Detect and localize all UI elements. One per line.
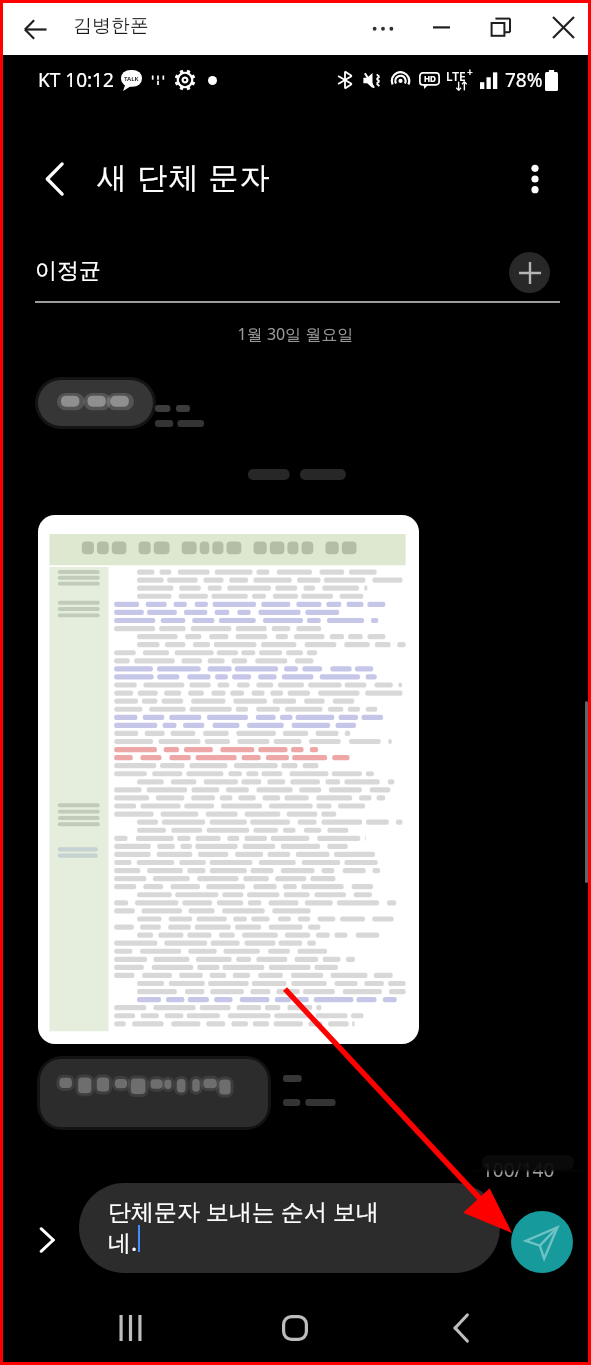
staticText: 김병한폰 [73, 14, 149, 38]
button[interactable]: Maximize [479, 5, 523, 49]
button[interactable]: Recent apps [102, 1300, 158, 1356]
button[interactable]: More options [509, 153, 561, 205]
staticText: HD [424, 73, 436, 84]
button[interactable]: Minimize [419, 5, 463, 49]
button[interactable]: Attached image [38, 515, 419, 1044]
button[interactable]: Navigate back [30, 155, 78, 203]
staticText: KT 10:12 [38, 67, 114, 93]
button[interactable] [40, 1059, 268, 1127]
button[interactable]: Back [15, 9, 55, 49]
staticText: 1월 30일 월요일 [3, 323, 588, 345]
button[interactable]: Send message [511, 1211, 573, 1273]
button[interactable]: Back [433, 1300, 489, 1356]
staticText: 새 단체 문자 [97, 156, 271, 197]
staticText: 100/140 [482, 1157, 555, 1183]
button[interactable]: More [361, 5, 405, 49]
button[interactable]: Add recipient [509, 252, 550, 293]
button[interactable]: 단체문자 보내는 순서 보내 [79, 1183, 500, 1273]
staticText: TALK [124, 75, 139, 83]
button[interactable]: Show attachment options [23, 1216, 71, 1264]
staticText: 이정균 [35, 257, 101, 285]
staticText: LTE [446, 68, 466, 84]
staticText: 단체문자 보내는 순서 보내 [108, 1195, 379, 1226]
staticText: 78% [505, 67, 543, 93]
button[interactable]: Home [267, 1300, 323, 1356]
button[interactable] [38, 380, 153, 426]
staticText: 네. [108, 1226, 138, 1257]
button[interactable]: Close [541, 5, 585, 49]
staticText: + [467, 65, 473, 79]
